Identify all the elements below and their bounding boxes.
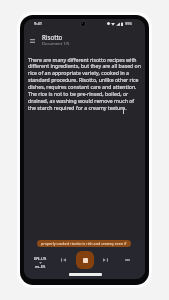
staticText: Document 1/5: [42, 41, 70, 47]
button[interactable]: Skip forward: [100, 255, 110, 265]
staticText: EN-US: [34, 256, 47, 262]
button[interactable]: EN-US: [32, 255, 49, 271]
button[interactable]: Stop playback: [76, 251, 94, 269]
staticText: properly cooked risotto is rich and crea…: [41, 241, 127, 246]
staticText: Risotto: [42, 33, 63, 41]
staticText: There are many different risotto recipes…: [28, 56, 141, 112]
button[interactable]: More options: [122, 255, 132, 265]
staticText: 99%: [125, 21, 133, 26]
button[interactable]: properly cooked risotto is rich and crea…: [37, 240, 131, 247]
button[interactable]: Replay: [58, 255, 68, 265]
button[interactable]: Navigation menu: [26, 34, 39, 47]
staticText: 9:41: [34, 21, 42, 26]
staticText: es-ES: [35, 264, 46, 270]
